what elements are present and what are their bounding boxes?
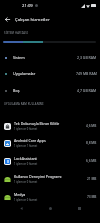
- staticText: LockAssistant: [14, 156, 37, 161]
- staticText: 1 işlem ve 0 hizmet: [14, 162, 38, 166]
- staticText: Kullanıcı Deneyimi Programı: [14, 174, 62, 179]
- staticText: 1 işlem ve 0 hizmet: [14, 180, 38, 184]
- staticText: 21:09: [22, 3, 33, 9]
- staticText: UYGULAMA RAM KULLANIMI: [4, 102, 44, 106]
- button[interactable]: Android Core Apps: [0, 134, 100, 152]
- staticText: 4,7 GB RAM: [77, 88, 97, 93]
- staticText: 73 MB: [87, 195, 97, 199]
- staticText: 1 işlem ve 1 hizmet: [14, 144, 38, 148]
- staticText: Android Core Apps: [14, 138, 46, 143]
- button[interactable]: LockAssistant: [0, 152, 100, 170]
- staticText: 6,6 MB: [86, 159, 97, 163]
- staticText: Boş: [13, 88, 20, 93]
- button[interactable]: Boş: [0, 82, 100, 99]
- button[interactable]: Ana ekran: [42, 201, 58, 215]
- staticText: SİSTEM HAFIZASI: [4, 31, 28, 35]
- staticText: Tek Dokunuşla Ekran Kilitle: [14, 121, 60, 126]
- staticText: 4,6 MB: [86, 124, 97, 128]
- staticText: 2,3 GB RAM: [77, 55, 97, 60]
- button[interactable]: Uygulamalar: [0, 65, 100, 82]
- button[interactable]: Tek Dokunuşla Ekran Kilitle: [0, 117, 100, 135]
- staticText: 1 işlem ve 0 hizmet: [14, 198, 38, 202]
- staticText: 8,8 MB: [86, 141, 97, 145]
- staticText: 1 işlem ve 0 hizmet: [14, 127, 38, 131]
- button[interactable]: Sistem: [0, 49, 100, 66]
- button[interactable]: Geri: [1, 13, 14, 26]
- button[interactable]: Geri: [13, 201, 29, 215]
- button[interactable]: Kullanıcı Deneyimi Programı: [0, 170, 100, 188]
- staticText: Uygulamalar: [13, 71, 36, 76]
- staticText: Çalışan hizmetler: [15, 16, 50, 22]
- staticText: 749 MB RAM: [76, 71, 97, 76]
- button[interactable]: Son kullanılanlar: [71, 201, 87, 215]
- button[interactable]: Medya: [0, 188, 100, 206]
- staticText: 21 MB: [87, 177, 97, 181]
- staticText: Sistem: [13, 55, 25, 60]
- staticText: Medya: [14, 192, 26, 197]
